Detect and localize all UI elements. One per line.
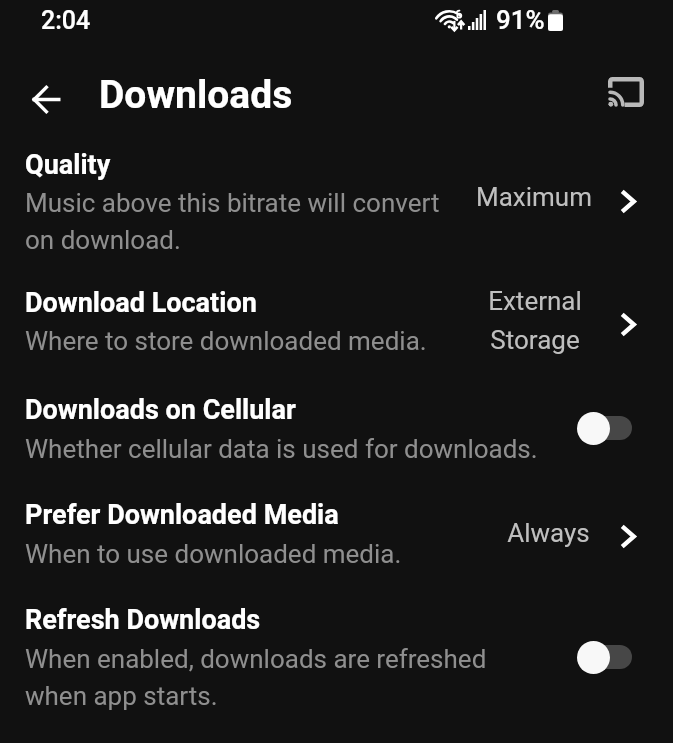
button[interactable]: Back [25, 78, 67, 120]
staticText: Maximum [463, 182, 605, 212]
staticText: Refresh Downloads [25, 604, 261, 636]
staticText: Downloads [99, 72, 293, 118]
staticText: When to use downloaded media. [25, 539, 402, 569]
staticText: When enabled, downloads are refreshed wh… [25, 644, 487, 711]
staticText: Download Location [25, 287, 257, 319]
button[interactable]: Prefer Downloaded Media [0, 485, 673, 590]
button[interactable]: Refresh Downloads, off [577, 640, 632, 674]
staticText: Music above this bitrate will convert on… [25, 188, 440, 255]
staticText: Always [493, 518, 604, 548]
button[interactable]: Refresh Downloads [0, 589, 673, 731]
staticText: External Storage [472, 286, 598, 355]
button[interactable]: Cast [604, 70, 648, 114]
button[interactable]: Downloads on Cellular, off [577, 411, 632, 445]
staticText: 91% [496, 5, 545, 35]
button[interactable]: Download Location [0, 274, 673, 378]
staticText: Downloads on Cellular [25, 394, 296, 426]
button[interactable]: Downloads on Cellular [0, 378, 673, 484]
staticText: 2:04 [41, 6, 91, 35]
staticText: Quality [25, 149, 111, 181]
staticText: Prefer Downloaded Media [25, 499, 339, 531]
staticText: Whether cellular data is used for downlo… [25, 434, 538, 464]
staticText: Where to store downloaded media. [25, 326, 427, 356]
button[interactable]: Quality [0, 136, 673, 275]
